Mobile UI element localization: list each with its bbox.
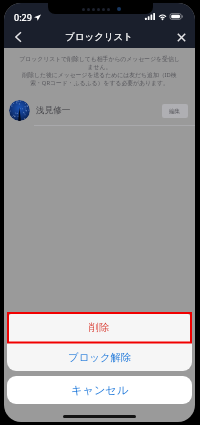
button[interactable]: 編集 [162,104,188,118]
staticText: 削除 [89,321,110,334]
staticText: ブロックリスト [65,31,134,43]
staticText: 編集 [169,108,181,115]
staticText: ブロック解除 [68,351,132,364]
staticText: 0:29 [14,11,32,23]
button[interactable]: 浅見修一 [4,96,195,125]
button[interactable]: Close [167,26,195,48]
button[interactable]: Back [4,26,32,48]
staticText: キャンセル [71,383,129,397]
button[interactable]: ブロック解除 [7,343,192,371]
staticText: 浅見修一 [36,105,71,116]
staticText: ブロックリストで削除しても相手からのメッセージを受信しません。 削除した後にメッ… [17,55,182,87]
button[interactable]: キャンセル [7,376,192,404]
button[interactable]: 削除 [7,312,192,342]
